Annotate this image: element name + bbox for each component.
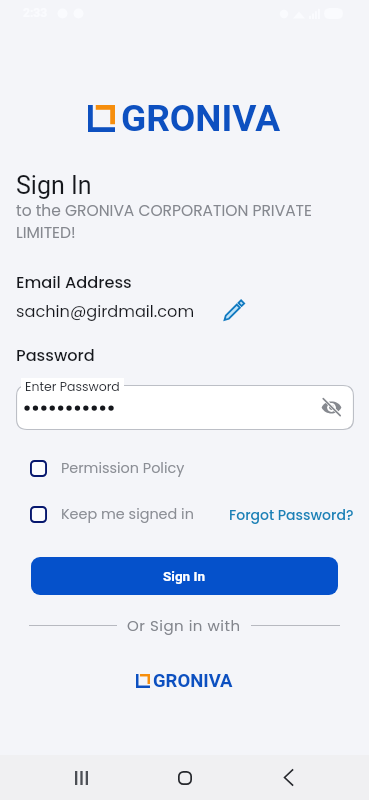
staticText: GRONIVA xyxy=(153,670,233,692)
staticText: Sign In xyxy=(163,568,206,584)
staticText: Forgot Password? xyxy=(229,505,354,525)
staticText: Email Address xyxy=(16,271,132,294)
button[interactable]: Recent apps xyxy=(59,755,103,800)
staticText: GRONIVA xyxy=(121,97,281,140)
button[interactable]: Show password xyxy=(321,397,342,418)
button[interactable]: Back xyxy=(266,755,310,800)
button[interactable]: Forgot Password? xyxy=(229,505,354,525)
staticText: Password xyxy=(16,344,95,367)
button[interactable]: Permission Policy xyxy=(30,458,185,478)
staticText: Sign In xyxy=(16,171,92,200)
button[interactable]: Home xyxy=(162,755,207,800)
button[interactable]: Edit email address xyxy=(222,298,246,322)
staticText: to the GRONIVA CORPORATION PRIVATE LIMIT… xyxy=(16,200,336,244)
staticText: Keep me signed in xyxy=(61,504,194,524)
button[interactable]: Sign In xyxy=(31,557,338,595)
button[interactable]: Keep me signed in xyxy=(30,504,194,524)
staticText: Permission Policy xyxy=(61,458,185,478)
button[interactable]: Show password xyxy=(16,385,354,430)
staticText: Or Sign in with xyxy=(127,615,241,636)
staticText: sachin@girdmail.com xyxy=(16,300,195,323)
staticText: Enter Password xyxy=(25,378,120,395)
